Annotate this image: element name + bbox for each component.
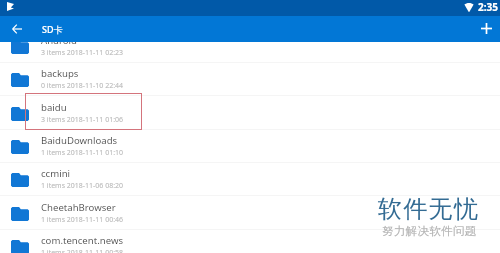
button[interactable]: CheetahBrowser [0, 197, 500, 230]
staticText: 1 items 2018-11-11 00:58 [41, 248, 124, 253]
button[interactable]: BaiduDownloads [0, 130, 500, 163]
staticText: BaiduDownloads [41, 134, 118, 147]
staticText: 1 items 2018-11-06 08:20 [41, 181, 124, 191]
staticText: ccmini [41, 167, 71, 180]
staticText: 1 items 2018-11-11 00:46 [41, 215, 124, 225]
staticText: 3 items 2018-11-11 01:06 [41, 115, 124, 125]
staticText: com.tencent.news [41, 234, 124, 247]
staticText: Android [41, 34, 77, 47]
button[interactable]: ccmini [0, 163, 500, 196]
staticText: CheetahBrowser [41, 201, 116, 214]
button[interactable]: Add [474, 16, 498, 40]
button[interactable]: Android [0, 30, 500, 63]
staticText: 1 items 2018-11-11 01:10 [41, 148, 124, 158]
staticText: 2:35 [478, 0, 498, 14]
button[interactable]: com.tencent.news [0, 230, 500, 253]
button[interactable]: baidu [0, 97, 500, 130]
staticText: 3 items 2018-11-11 02:23 [41, 48, 124, 58]
staticText: 软件无忧 [378, 194, 480, 224]
button[interactable]: backups [0, 63, 500, 96]
staticText: 努力解决软件问题 [382, 224, 477, 239]
staticText: backups [41, 67, 79, 80]
staticText: baidu [41, 101, 67, 114]
staticText: SD卡 [42, 23, 63, 35]
staticText: 0 items 2018-11-10 22:44 [41, 81, 124, 91]
button[interactable]: Back [4, 16, 30, 42]
